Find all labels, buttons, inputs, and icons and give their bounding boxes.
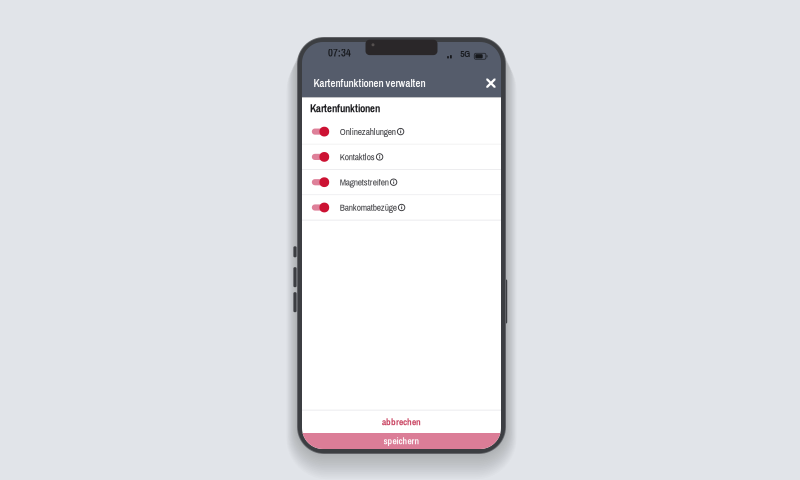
staticText: Kartenfunktionen verwalten	[313, 76, 425, 90]
staticText: Onlinezahlungen	[340, 125, 396, 138]
button[interactable]: Kontaktlos	[302, 145, 501, 170]
button[interactable]: Bankomatbezüge	[302, 195, 501, 221]
staticText: Bankomatbezüge	[340, 201, 397, 214]
staticText: Kartenfunktionen	[310, 101, 380, 116]
staticText: 5G	[460, 47, 470, 60]
button[interactable]: Magnetstreifen	[302, 170, 501, 195]
button[interactable]: abbrechen	[302, 411, 501, 433]
button[interactable]: speichern	[302, 433, 501, 449]
button[interactable]: Schließen	[481, 74, 500, 93]
staticText: Kontaktlos	[340, 151, 375, 163]
staticText: speichern	[383, 435, 419, 447]
button[interactable]: Onlinezahlungen	[302, 119, 501, 145]
staticText: Magnetstreifen	[340, 176, 389, 188]
staticText: abbrechen	[382, 415, 421, 428]
staticText: 07:34	[328, 45, 351, 60]
